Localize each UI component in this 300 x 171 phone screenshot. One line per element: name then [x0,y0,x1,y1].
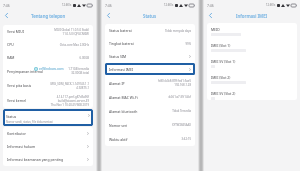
staticText: 7:46 [3,3,10,8]
button[interactable]: Kontributor [3,127,93,140]
button[interactable]: Versi kernel [3,93,93,108]
staticText: Alamat IP [109,81,125,86]
staticText: 1.71GB tersedia 32.00GB total [68,67,89,75]
button[interactable]: IMEI SV (Slot 2) [207,87,297,100]
staticText: d4:61:a7:39:14:bf [168,95,191,99]
staticText: Informasi IMEI [109,67,134,72]
staticText: 3:42:15 [181,137,191,141]
staticText: Versi MIUI [7,29,24,34]
staticText: Versi kernel [7,98,27,103]
staticText: Alamat bluetooth [109,109,138,114]
button[interactable]: Back [104,11,113,20]
staticText: Status SIM [109,54,127,59]
staticText: Waktu aktif [109,137,128,142]
staticText: 99% [185,42,191,46]
button[interactable]: Penyimpanan internal [3,64,93,78]
button[interactable]: Informasi IMEI [105,63,195,76]
button[interactable]: RAM [3,51,93,64]
button[interactable]: Back [206,11,215,20]
button[interactable]: Alamat MAC Wi-Fi [105,90,195,104]
staticText: Nomor sandi, status, File dokumentasi [6,120,53,124]
staticText: IMEI (Slot 1) [211,43,231,48]
button[interactable]: IMEI (Slot 2) [207,71,297,87]
staticText: Tidak menyala daya [164,29,191,33]
staticText: 4.14.117-perf-g87d5a96f build@xiaomi-ser… [50,95,89,107]
staticText: Informasi keamanan yang penting [7,157,64,162]
staticText: Kontributor [7,131,27,136]
button[interactable]: Status baterai [105,24,195,37]
button[interactable]: Versi pita basis [3,78,93,93]
button[interactable]: Back [2,11,11,20]
staticText: 12.6K/s [62,3,72,7]
staticText: Informasi IMEI [236,13,268,19]
staticText: Octa-core Max 2.0GHz [59,43,89,47]
staticText: Status [143,13,157,19]
staticText: Status [6,114,17,119]
staticText: MEID [211,27,220,32]
staticText: 12.6K/s [266,3,276,7]
staticText: IMEI SV (Slot 2) [211,91,236,96]
button[interactable]: IMEI SV (Slot 1) [207,55,297,71]
button[interactable]: Alamat bluetooth [105,104,195,118]
staticText: 7:46 [105,3,112,8]
staticText: Tentang telepon [31,13,66,19]
staticText: RAM [7,55,15,60]
staticText: erWindows.com [39,67,64,71]
button[interactable]: Alamat IP [105,76,195,90]
staticText: Nomor seri [109,123,128,128]
staticText: MSS_SDM_PACK-1.149143.1.1 4.92875.1 [50,82,89,90]
button[interactable]: Informasi keamanan yang penting [3,153,93,166]
staticText: Alamat MAC Wi-Fi [109,95,138,100]
staticText: 7:46 [207,3,214,8]
staticText: Tingkat baterai [109,41,134,46]
button[interactable]: IMEI (Slot 1) [207,39,297,55]
button[interactable]: Status SIM [105,50,195,63]
staticText: Status baterai [109,28,132,33]
staticText: MIUI Global 11.0.5.0 Stabil 11.0.5.0 (QF… [54,28,89,36]
staticText: IMEI (Slot 2) [211,75,231,80]
button[interactable]: Status [3,109,93,126]
staticText: Penyimpanan internal [7,69,43,74]
staticText: Informasi hukum [7,144,36,149]
staticText: 12.6K/s [164,3,174,7]
button[interactable]: MEID [207,23,297,39]
staticText: IMEI SV (Slot 1) [211,59,236,64]
button[interactable]: Versi MIUI [3,25,93,38]
staticText: Versi pita basis [7,83,32,88]
staticText: fe80::b0c8:87ff:fed1:5ae5 192.168.1.28 [157,79,191,87]
button[interactable]: Nomor seri [105,118,195,132]
staticText: XYTW2845AAX [172,123,191,127]
button[interactable]: Tingkat baterai [105,37,195,50]
button[interactable]: CPU [3,38,93,51]
staticText: 6.00GB [79,56,89,60]
button[interactable]: Informasi hukum [3,140,93,153]
staticText: CPU [7,42,14,47]
staticText: Tidak Tersedia [172,109,191,113]
button[interactable]: Waktu aktif [105,132,195,146]
